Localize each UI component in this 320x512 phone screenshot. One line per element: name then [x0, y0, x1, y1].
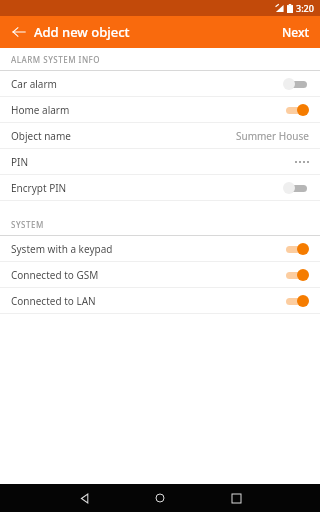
- staticText: Add new object: [34, 23, 130, 41]
- button[interactable]: Encrypt PIN: [0, 175, 320, 200]
- button[interactable]: System with a keypad: [0, 236, 320, 261]
- staticText: Next: [282, 24, 310, 40]
- staticText: PIN: [11, 155, 29, 169]
- button[interactable]: Object name: [0, 123, 320, 148]
- staticText: SYSTEM: [11, 219, 44, 230]
- button[interactable]: PIN: [0, 149, 320, 174]
- staticText: Home alarm: [11, 103, 70, 117]
- button[interactable]: Back: [8, 21, 30, 43]
- staticText: Car alarm: [11, 77, 57, 91]
- staticText: Object name: [11, 129, 71, 143]
- staticText: Connected to LAN: [11, 294, 96, 308]
- button[interactable]: Home alarm: [0, 97, 320, 122]
- staticText: ALARM SYSTEM INFO: [11, 54, 101, 65]
- staticText: System with a keypad: [11, 242, 113, 256]
- staticText: Connected to GSM: [11, 268, 99, 282]
- staticText: 3:20: [296, 2, 314, 14]
- staticText: Summer House: [236, 129, 309, 143]
- button[interactable]: Connected to LAN: [0, 288, 320, 313]
- button[interactable]: Next: [272, 16, 320, 48]
- button[interactable]: Home: [122, 484, 198, 512]
- button[interactable]: Car alarm: [0, 71, 320, 96]
- button[interactable]: Back: [46, 484, 122, 512]
- button[interactable]: Connected to GSM: [0, 262, 320, 287]
- staticText: Encrypt PIN: [11, 181, 67, 195]
- button[interactable]: Recents: [198, 484, 274, 512]
